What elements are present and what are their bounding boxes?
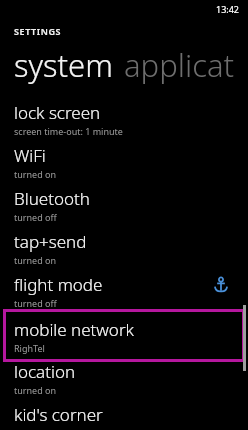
- button[interactable]: location: [0, 360, 248, 403]
- staticText: 13:42: [216, 3, 240, 15]
- button[interactable]: Bluetooth: [0, 187, 248, 230]
- button[interactable]: tap+send: [0, 230, 248, 273]
- staticText: WiFi: [14, 144, 46, 167]
- staticText: turned off: [14, 211, 57, 223]
- staticText: kid's corner: [14, 403, 103, 426]
- other: Pin to start: [213, 277, 229, 293]
- button[interactable]: system: [14, 44, 113, 86]
- staticText: mobile network: [14, 318, 134, 341]
- staticText: turned off: [14, 297, 57, 309]
- staticText: SETTINGS: [14, 25, 62, 37]
- staticText: location: [14, 360, 76, 383]
- staticText: lock screen: [14, 101, 101, 124]
- staticText: Bluetooth: [14, 187, 90, 210]
- staticText: turned on: [14, 254, 57, 266]
- staticText: tap+send: [14, 230, 87, 253]
- staticText: RighTel: [14, 342, 45, 354]
- staticText: turned on: [14, 384, 57, 396]
- button[interactable]: kid's corner: [0, 403, 248, 430]
- staticText: screen time-out: 1 minute: [14, 125, 123, 137]
- button[interactable]: mobile network: [3, 309, 245, 362]
- button[interactable]: WiFi: [0, 144, 248, 187]
- button[interactable]: lock screen: [0, 101, 248, 144]
- staticText: flight mode: [14, 273, 103, 296]
- button[interactable]: flight mode: [0, 273, 248, 316]
- staticText: turned on: [14, 168, 57, 180]
- button[interactable]: applicat: [124, 44, 235, 86]
